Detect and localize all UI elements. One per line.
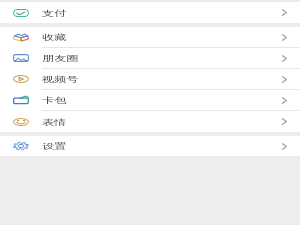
button[interactable]: 卡包	[0, 90, 300, 110]
staticText: 视频号	[42, 74, 78, 84]
button[interactable]: 视频号	[0, 69, 300, 89]
button[interactable]: 设置	[0, 136, 300, 156]
staticText: 朋友圈	[42, 53, 78, 63]
staticText: 收藏	[42, 32, 66, 42]
staticText: 设置	[42, 141, 66, 151]
staticText: 卡包	[42, 95, 66, 105]
button[interactable]: 表情	[0, 111, 300, 132]
staticText: 支付	[42, 8, 66, 18]
button[interactable]: 收藏	[0, 27, 300, 47]
staticText: 表情	[42, 117, 66, 127]
button[interactable]: 朋友圈	[0, 48, 300, 68]
button[interactable]: 支付	[0, 2, 300, 23]
